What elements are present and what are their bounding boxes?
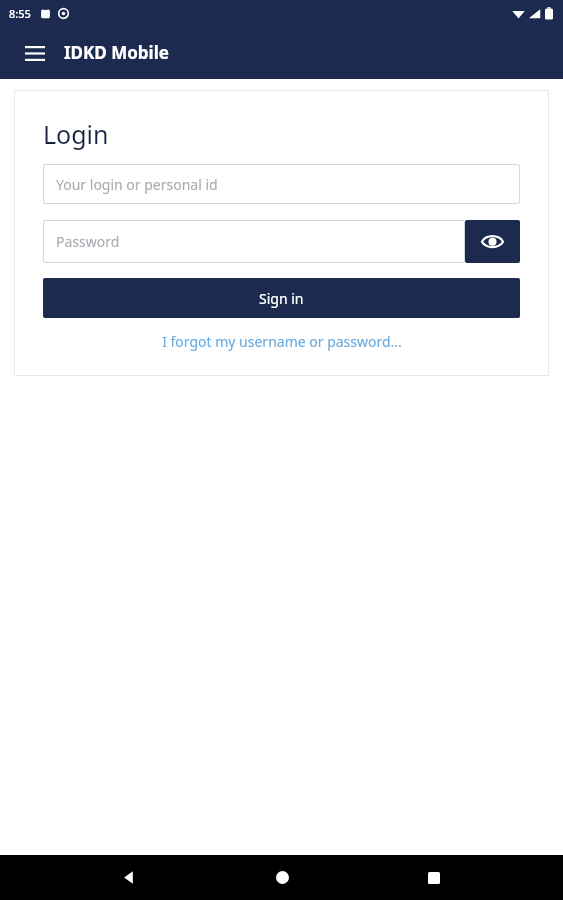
button[interactable]: Show password bbox=[465, 220, 520, 263]
button[interactable]: Your login or personal id bbox=[43, 164, 520, 204]
staticText: Sign in bbox=[259, 289, 304, 308]
staticText: 8:55 bbox=[9, 6, 31, 21]
button[interactable]: Recent apps bbox=[410, 855, 458, 900]
staticText: IDKD Mobile bbox=[64, 41, 169, 64]
button[interactable]: Home bbox=[258, 855, 306, 900]
button[interactable]: I forgot my username or password... bbox=[43, 332, 520, 351]
staticText: Login bbox=[43, 117, 109, 151]
button[interactable]: Back bbox=[105, 855, 153, 900]
button[interactable]: Open navigation menu bbox=[18, 36, 52, 70]
staticText: I forgot my username or password... bbox=[162, 332, 402, 351]
button[interactable]: Sign in bbox=[43, 278, 520, 318]
staticText: Your login or personal id bbox=[56, 175, 218, 194]
button[interactable]: Password bbox=[43, 220, 465, 263]
staticText: Password bbox=[56, 232, 120, 251]
